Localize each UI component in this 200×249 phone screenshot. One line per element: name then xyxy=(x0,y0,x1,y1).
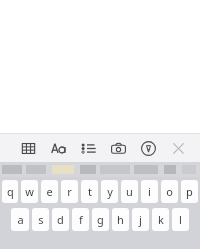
button[interactable]: f xyxy=(72,208,89,231)
staticText: e xyxy=(46,184,53,199)
button[interactable]: e xyxy=(41,180,58,203)
button[interactable]: g xyxy=(92,208,109,231)
staticText: a xyxy=(17,212,24,227)
staticText: u xyxy=(126,184,133,199)
button[interactable]: Text format xyxy=(46,136,70,160)
staticText: y xyxy=(107,184,113,199)
button[interactable]: r xyxy=(61,180,78,203)
staticText: g xyxy=(97,212,104,227)
button[interactable]: j xyxy=(132,208,149,231)
button[interactable]: Close xyxy=(166,136,190,160)
button[interactable]: p xyxy=(181,180,198,203)
button[interactable]: Insert table xyxy=(16,136,40,160)
staticText: d xyxy=(57,212,64,227)
button[interactable]: a xyxy=(11,208,29,231)
staticText: f xyxy=(79,212,83,227)
button[interactable]: k xyxy=(152,208,169,231)
button[interactable]: d xyxy=(52,208,69,231)
staticText: o xyxy=(166,184,173,199)
button[interactable]: Camera xyxy=(106,136,130,160)
button[interactable]: Markup xyxy=(136,136,160,160)
button[interactable]: i xyxy=(141,180,158,203)
button[interactable]: u xyxy=(121,180,138,203)
staticText: w xyxy=(25,184,34,199)
button[interactable]: h xyxy=(112,208,129,231)
button[interactable]: w xyxy=(21,180,38,203)
staticText: q xyxy=(7,184,14,199)
staticText: k xyxy=(158,212,164,227)
staticText: t xyxy=(88,184,92,199)
staticText: j xyxy=(139,212,142,227)
button[interactable]: t xyxy=(81,180,98,203)
button[interactable]: q xyxy=(2,180,18,203)
staticText: p xyxy=(186,184,193,199)
staticText: i xyxy=(148,184,151,199)
staticText: h xyxy=(117,212,124,227)
button[interactable]: l xyxy=(172,208,189,231)
staticText: r xyxy=(67,184,72,199)
button[interactable]: y xyxy=(101,180,118,203)
button[interactable]: Lists xyxy=(76,136,100,160)
button[interactable]: o xyxy=(161,180,178,203)
button[interactable]: s xyxy=(32,208,49,231)
staticText: l xyxy=(179,212,182,227)
staticText: s xyxy=(38,212,44,227)
